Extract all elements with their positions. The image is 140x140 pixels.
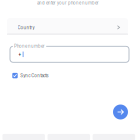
staticText: and enter your phone number [37, 0, 99, 6]
staticText: Phone number [14, 44, 45, 49]
button[interactable]: Sync Contacts [12, 73, 48, 78]
button[interactable]: Country [7, 18, 128, 34]
staticText: Sync Contacts [20, 73, 48, 78]
staticText: Country [17, 25, 34, 30]
staticText: + [18, 52, 21, 57]
button[interactable]: Continue [113, 104, 128, 119]
